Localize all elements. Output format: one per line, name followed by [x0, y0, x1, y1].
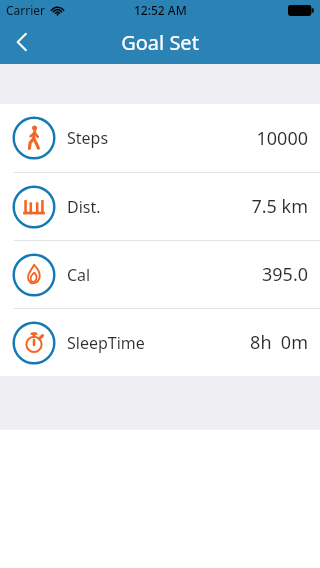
staticText: Cal [67, 264, 91, 286]
button[interactable]: Dist. [0, 173, 320, 240]
staticText: 7.5 km [251, 194, 308, 219]
staticText: Dist. [67, 196, 101, 218]
staticText: 12:52 AM [134, 2, 187, 18]
button[interactable]: Back [0, 20, 44, 64]
staticText: 8h 0m [250, 330, 308, 355]
staticText: Steps [67, 127, 109, 149]
staticText: SleepTime [67, 332, 145, 354]
button[interactable]: SleepTime [0, 309, 320, 376]
button[interactable]: Cal [0, 241, 320, 308]
staticText: Goal Set [121, 29, 199, 56]
staticText: 10000 [256, 126, 308, 151]
staticText: Carrier [6, 2, 46, 18]
button[interactable]: Steps [0, 104, 320, 172]
staticText: 395.0 [261, 262, 308, 287]
